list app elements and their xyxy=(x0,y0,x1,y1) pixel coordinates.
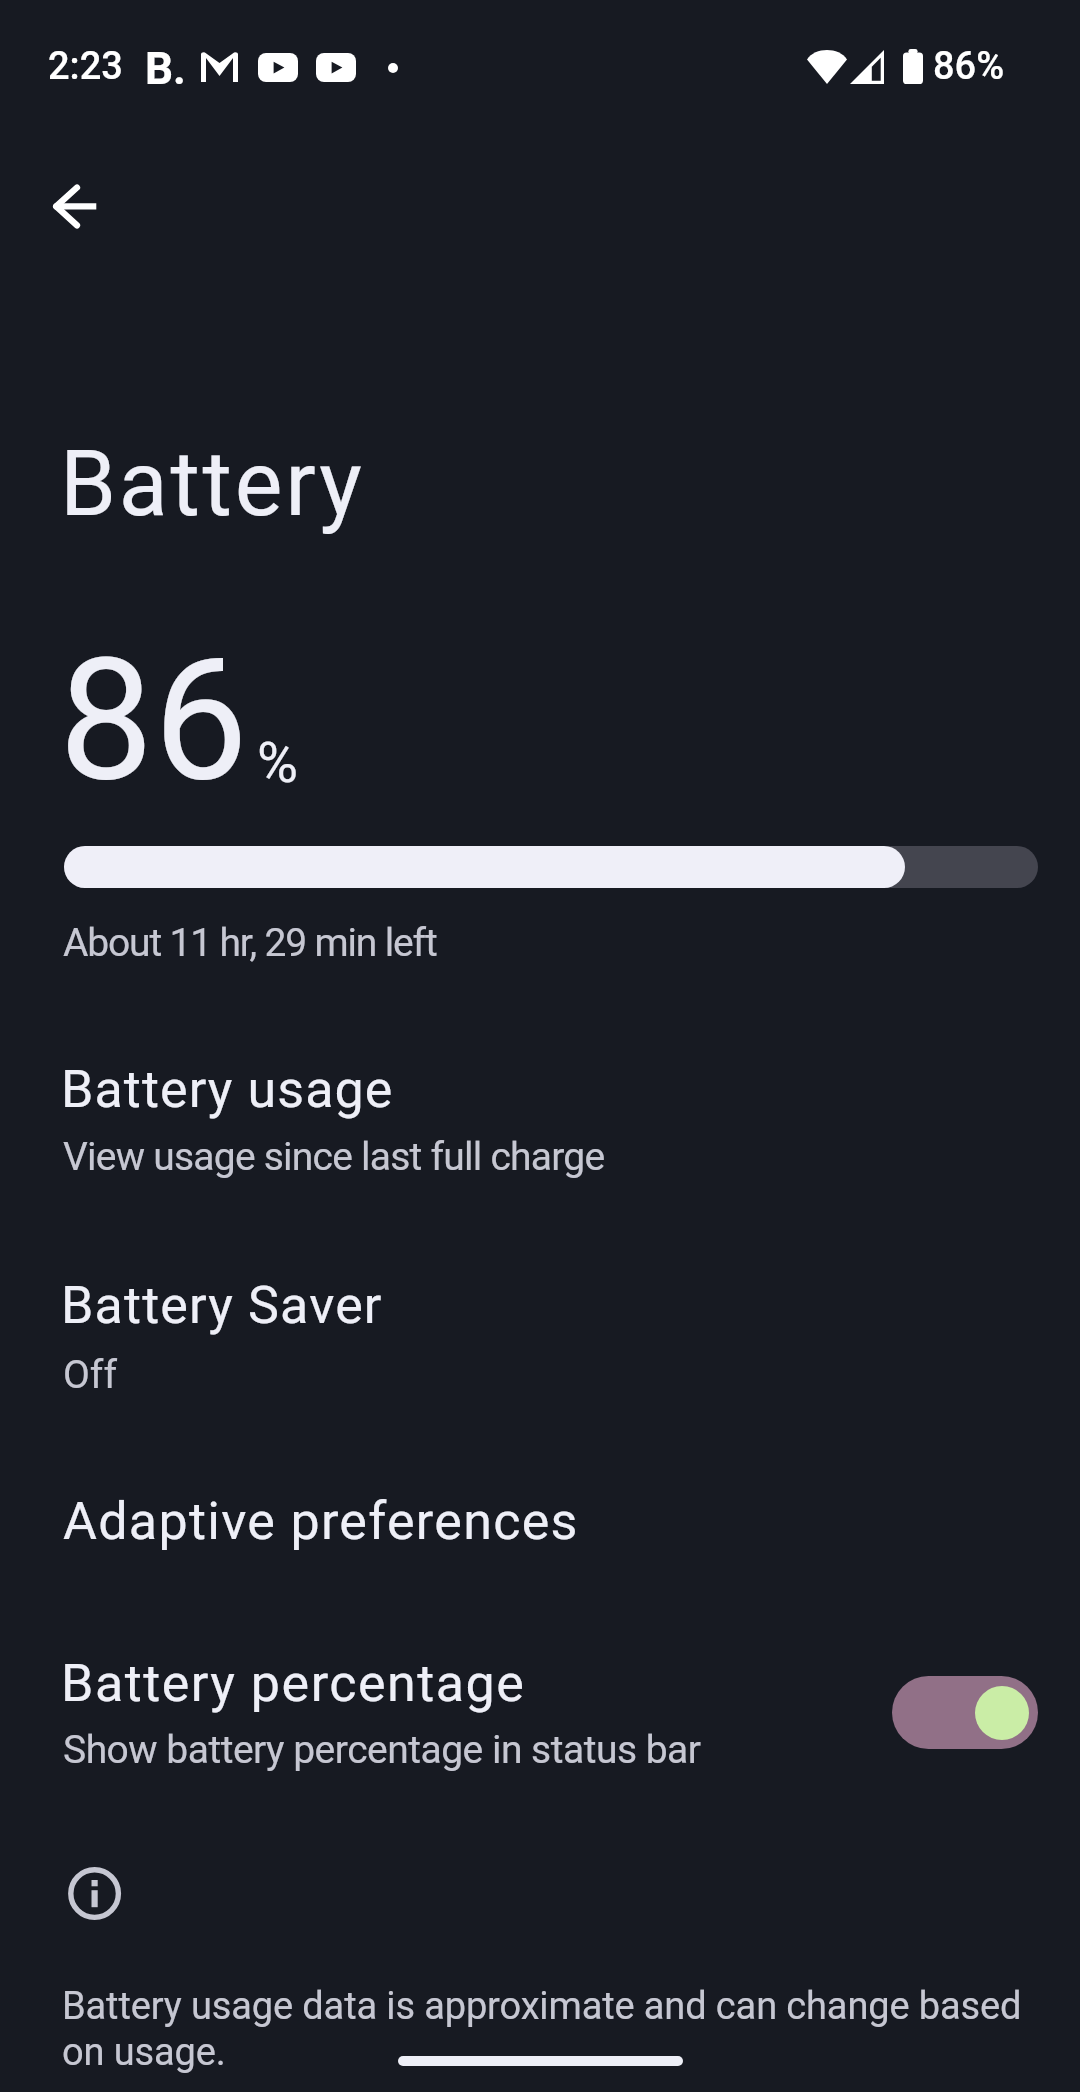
staticText: % xyxy=(257,730,299,796)
staticText: 86% xyxy=(933,44,1005,89)
staticText: Battery usage data is approximate and ca… xyxy=(62,1984,1042,2075)
staticText: Adaptive preferences xyxy=(63,1491,579,1552)
button[interactable]: More information xyxy=(58,1857,130,1929)
staticText: Show battery percentage in status bar xyxy=(63,1727,701,1773)
button[interactable]: Battery usage xyxy=(0,1025,1080,1215)
staticText: Battery Saver xyxy=(61,1275,383,1336)
button[interactable]: Battery percentage switch xyxy=(892,1676,1038,1749)
staticText: View usage since last full charge xyxy=(63,1134,605,1180)
staticText: 2:23 xyxy=(48,44,123,89)
button[interactable]: Battery Saver xyxy=(0,1241,1080,1431)
staticText: B. xyxy=(145,43,186,95)
staticText: Battery xyxy=(60,432,365,537)
staticText: Battery percentage xyxy=(61,1653,526,1714)
staticText: About 11 hr, 29 min left xyxy=(63,920,437,966)
staticText: Off xyxy=(63,1352,117,1398)
button[interactable]: Battery percentage xyxy=(0,1620,1080,1810)
staticText: Battery usage xyxy=(61,1059,394,1120)
button[interactable]: Back xyxy=(20,164,106,250)
staticText: 86 xyxy=(59,622,248,819)
